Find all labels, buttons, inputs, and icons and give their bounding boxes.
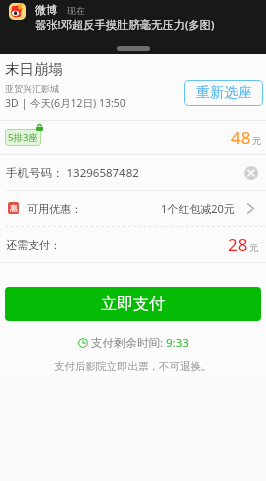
staticText: 重新选座 (196, 84, 252, 102)
staticText: 手机号码： 13296587482 (6, 165, 139, 181)
staticText: 微博 (35, 3, 57, 17)
staticText: 末日崩塌 (5, 60, 63, 78)
staticText: 还需支付： (6, 238, 61, 252)
staticText: 5排3座 (8, 131, 38, 144)
staticText: 28 (228, 233, 248, 256)
staticText: 立即支付 (101, 294, 165, 314)
button[interactable]: 微博 (0, 0, 266, 54)
staticText: 嚣张!邓超反手摸肚脐毫无压力(多图) (35, 17, 215, 32)
staticText: 48 (231, 126, 251, 149)
button[interactable]: 立即支付 (5, 287, 261, 321)
button[interactable]: 重新选座 (184, 80, 263, 106)
staticText: 1个红包减20元 (161, 201, 235, 216)
staticText: 现在 (67, 5, 85, 16)
staticText: 亚贸兴汇影城 (5, 83, 59, 94)
staticText: 支付后影院立即出票，不可退换。 (54, 360, 212, 373)
staticText: 惠 (10, 203, 18, 213)
staticText: 可用优惠： (27, 202, 82, 216)
staticText: 9:33 (166, 335, 189, 351)
staticText: 支付剩余时间: (91, 335, 164, 351)
staticText: 元 (249, 242, 259, 254)
button[interactable]: 惠 (8, 191, 254, 226)
staticText: 3D | 今天(6月12日) 13:50 (5, 96, 126, 110)
staticText: 元 (252, 135, 262, 147)
button[interactable]: 清除 (244, 166, 258, 180)
